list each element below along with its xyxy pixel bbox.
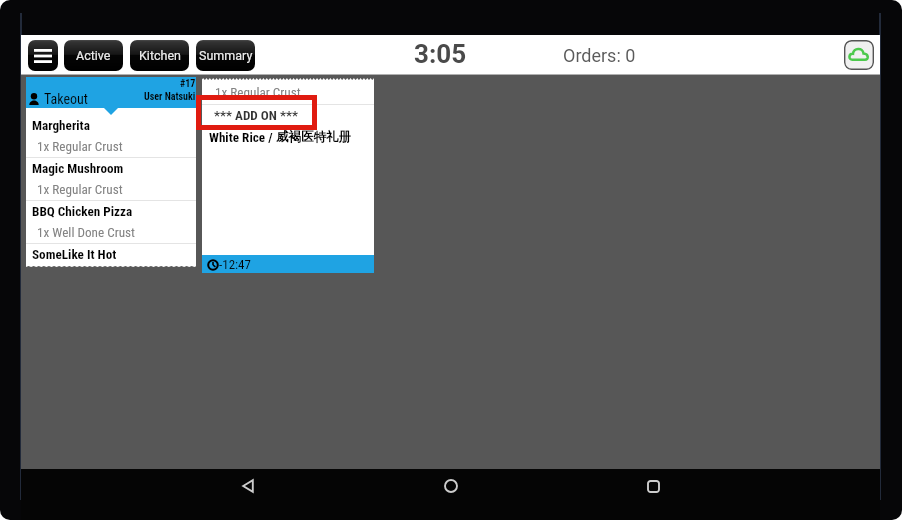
- staticText: #17: [180, 78, 196, 90]
- button[interactable]: Home: [437, 469, 465, 503]
- button[interactable]: Summary: [196, 40, 255, 71]
- button[interactable]: Cloud sync: [844, 40, 874, 70]
- staticText: SomeLike It Hot: [32, 247, 117, 262]
- staticText: 3:05: [414, 39, 467, 69]
- staticText: 1x Regular Crust: [37, 139, 123, 154]
- button[interactable]: Active: [64, 40, 123, 71]
- staticText: User Natsuki: [144, 91, 196, 103]
- staticText: Orders: 0: [563, 45, 636, 66]
- staticText: 1x Regular Crust: [37, 182, 123, 197]
- staticText: 威褐医特礼册: [276, 129, 351, 145]
- staticText: *** ADD ON ***: [214, 108, 298, 123]
- staticText: BBQ Chicken Pizza: [32, 204, 133, 219]
- staticText: Magic Mushroom: [32, 161, 124, 176]
- staticText: 1x Well Done Crust: [37, 225, 135, 240]
- staticText: White Rice /: [209, 130, 276, 145]
- staticText: Margherita: [32, 118, 90, 133]
- staticText: Takeout: [44, 91, 88, 107]
- button[interactable]: Menu: [28, 40, 58, 71]
- staticText: Active: [76, 48, 111, 63]
- button[interactable]: Recents: [639, 469, 667, 503]
- button[interactable]: Back: [234, 469, 262, 503]
- button[interactable]: Kitchen: [130, 40, 189, 71]
- staticText: Kitchen: [139, 48, 181, 63]
- staticText: -12:47: [219, 257, 251, 272]
- staticText: 1x Regular Crust: [215, 85, 301, 100]
- staticText: Summary: [199, 48, 253, 63]
